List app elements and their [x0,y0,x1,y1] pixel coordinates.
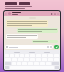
button[interactable] [6,20,48,27]
button[interactable]: Call [54,13,56,15]
button[interactable]: Video call [51,13,53,15]
button[interactable] [17,28,58,33]
button[interactable] [5,45,53,49]
button[interactable]: Send [54,45,59,49]
button[interactable] [6,34,38,39]
button[interactable]: Back [5,13,7,15]
button[interactable]: More options [57,13,59,15]
button[interactable] [32,40,58,43]
